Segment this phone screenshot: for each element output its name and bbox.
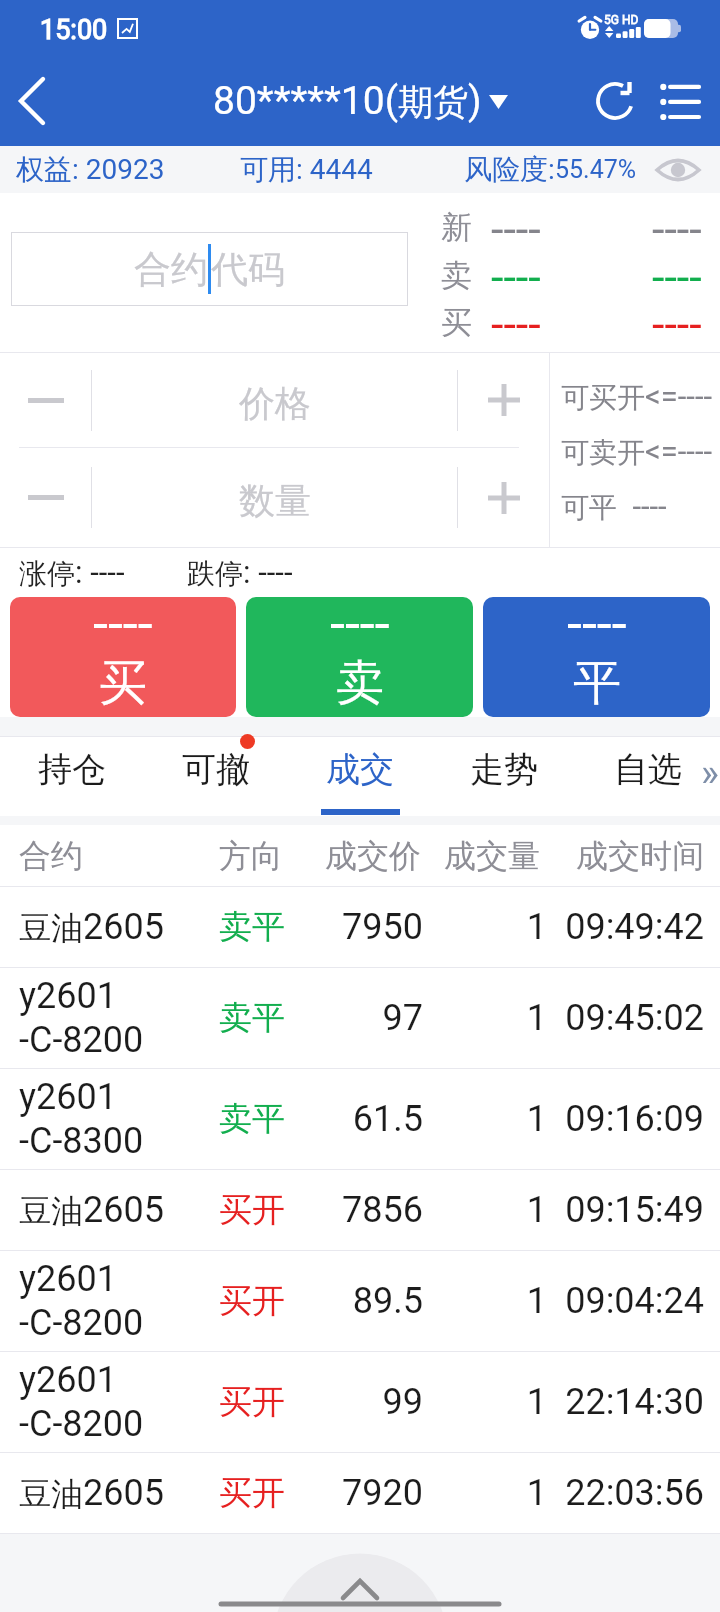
staticText: 可撤 [182, 748, 250, 791]
button[interactable]: y2601 [0, 1251, 720, 1351]
button[interactable]: 自选 [576, 737, 720, 816]
staticText: 1 [423, 1098, 547, 1140]
button[interactable]: Refresh [575, 56, 655, 146]
staticText: 1 [423, 1381, 547, 1423]
staticText: 97 [310, 997, 423, 1039]
staticText: 09:49:42 [547, 906, 704, 948]
staticText: 豆油2605 [19, 1189, 164, 1232]
staticText: 09:04:24 [547, 1280, 704, 1322]
staticText: 自选 [614, 748, 682, 791]
staticText: 合约 [19, 836, 219, 876]
staticText: 跌停: ---- [187, 554, 293, 591]
staticText: 成交 [326, 748, 394, 791]
staticText: 卖平 [219, 997, 310, 1039]
staticText: 09:15:49 [547, 1189, 704, 1231]
staticText: 7920 [310, 1472, 423, 1514]
button[interactable]: Menu [640, 56, 720, 146]
staticText: -C-8300 [19, 1120, 144, 1162]
staticText: y2601 [19, 1076, 117, 1118]
staticText: 89.5 [310, 1280, 423, 1322]
button[interactable]: 豆油2605 [0, 887, 720, 967]
staticText: 涨停: ---- [19, 554, 125, 591]
staticText: ---- [652, 203, 702, 251]
button[interactable]: 走势 [432, 737, 576, 816]
staticText: » [701, 751, 719, 796]
staticText: y2601 [19, 1258, 117, 1300]
staticText: 合约 [134, 246, 208, 293]
staticText: 买 [441, 303, 472, 342]
button[interactable]: Increase 价格 [458, 353, 549, 447]
staticText: ---- [652, 298, 702, 346]
button[interactable]: y2601 [0, 1352, 720, 1452]
staticText: 持仓 [38, 748, 106, 791]
staticText: 方向 [219, 836, 311, 876]
button[interactable]: y2601 [0, 968, 720, 1068]
staticText: ---- [330, 597, 390, 655]
staticText: 买开 [219, 1472, 310, 1514]
staticText: ---- [491, 251, 541, 299]
staticText: 新 [441, 208, 472, 247]
staticText: 61.5 [310, 1098, 423, 1140]
staticText: 成交时间 [540, 836, 704, 876]
staticText: 买开 [219, 1381, 310, 1423]
button[interactable]: 可撤 [144, 737, 288, 816]
staticText: 可卖开<=---- [561, 433, 713, 470]
staticText: 走势 [470, 748, 538, 791]
button[interactable]: 80*****10(期货) [180, 56, 540, 146]
staticText: 22:03:56 [547, 1472, 704, 1514]
staticText: -C-8200 [19, 1019, 144, 1061]
staticText: 买开 [219, 1189, 310, 1231]
button[interactable]: Decrease 价格 [0, 353, 91, 447]
button[interactable]: ---- [246, 597, 473, 717]
button[interactable]: 持仓 [0, 737, 144, 816]
staticText: -C-8200 [19, 1302, 144, 1344]
staticText: 数量 [239, 478, 311, 523]
button[interactable]: 数量 [92, 448, 457, 547]
staticText: ---- [491, 203, 541, 251]
staticText: 可用: 4444 [240, 152, 373, 187]
button[interactable]: 豆油2605 [0, 1453, 720, 1533]
staticText: 55.47% [555, 155, 637, 184]
staticText: 买开 [219, 1280, 310, 1322]
staticText: ---- [491, 298, 541, 346]
staticText: 权益: 20923 [16, 152, 165, 187]
staticText: 99 [310, 1381, 423, 1423]
staticText: 7950 [310, 906, 423, 948]
staticText: 1 [423, 997, 547, 1039]
staticText: 卖 [336, 653, 384, 713]
staticText: y2601 [19, 1359, 117, 1401]
staticText: 7856 [310, 1189, 423, 1231]
staticText: 卖 [441, 256, 472, 295]
button[interactable]: Decrease 数量 [0, 448, 91, 547]
button[interactable]: ---- [10, 597, 236, 717]
staticText: 15:00 [40, 14, 108, 46]
staticText: ---- [652, 251, 702, 299]
button[interactable]: 豆油2605 [0, 1170, 720, 1250]
staticText: 1 [423, 1280, 547, 1322]
staticText: ---- [93, 597, 153, 655]
button[interactable]: 合约 [11, 232, 408, 306]
staticText: 卖平 [219, 1098, 310, 1140]
button[interactable]: ---- [483, 597, 710, 717]
button[interactable]: More tabs [692, 737, 720, 816]
staticText: 22:14:30 [547, 1381, 704, 1423]
staticText: 卖平 [219, 906, 310, 948]
staticText: 豆油2605 [19, 1472, 164, 1515]
staticText: -C-8200 [19, 1403, 144, 1445]
staticText: 价格 [239, 381, 311, 426]
button[interactable]: Toggle balance visibility [650, 146, 706, 193]
staticText: y2601 [19, 975, 117, 1017]
button[interactable]: 价格 [92, 353, 457, 447]
staticText: 09:16:09 [547, 1098, 704, 1140]
staticText: 平 [573, 653, 621, 713]
button[interactable]: Back [0, 56, 64, 146]
button[interactable]: 成交 [288, 737, 432, 816]
staticText: 风险度: [464, 152, 555, 187]
staticText: 09:45:02 [547, 997, 704, 1039]
button[interactable]: Increase 数量 [458, 448, 549, 547]
button[interactable]: y2601 [0, 1069, 720, 1169]
staticText: 成交量 [421, 836, 540, 876]
staticText: 80*****10(期货) [213, 78, 482, 125]
staticText: 代码 [211, 246, 285, 293]
staticText: 1 [423, 1472, 547, 1514]
